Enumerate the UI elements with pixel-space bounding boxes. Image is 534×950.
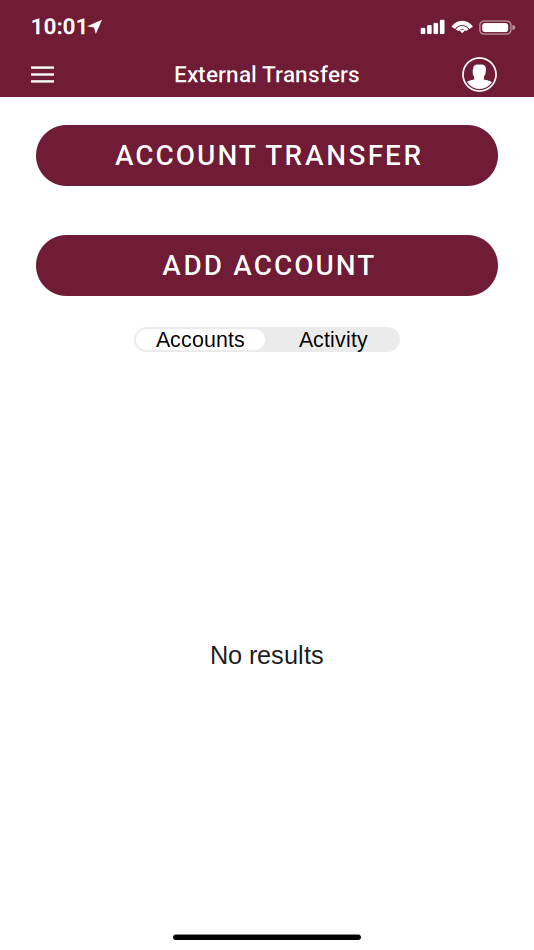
button[interactable]: Accounts	[134, 327, 267, 352]
button[interactable]: Menu	[20, 52, 65, 96]
staticText: No results	[210, 641, 324, 669]
staticText: ADD ACCOUNT	[162, 249, 374, 282]
staticText: Activity	[299, 328, 368, 351]
button[interactable]: Activity	[267, 327, 400, 352]
button[interactable]: ACCOUNT TRANSFER	[36, 125, 498, 186]
staticText: External Transfers	[174, 61, 360, 88]
staticText: 10:01	[30, 13, 88, 40]
button[interactable]: Profile	[457, 52, 502, 96]
button[interactable]: ADD ACCOUNT	[36, 235, 498, 296]
staticText: ACCOUNT TRANSFER	[115, 139, 421, 172]
staticText: Accounts	[156, 328, 245, 351]
